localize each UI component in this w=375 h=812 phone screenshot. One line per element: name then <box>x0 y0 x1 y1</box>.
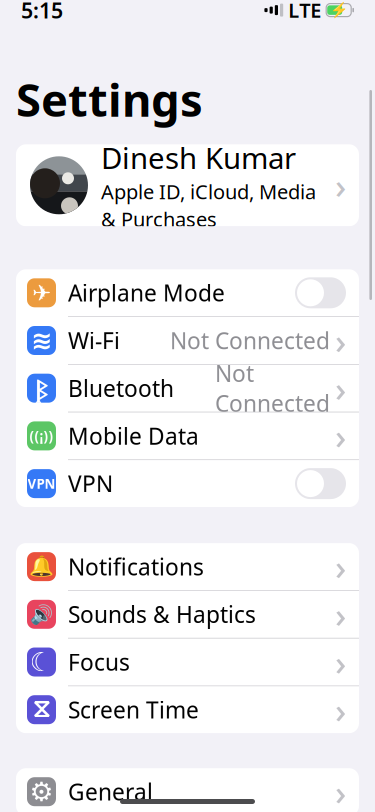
staticText: › <box>335 162 346 208</box>
staticText: ✈ <box>32 280 51 306</box>
button[interactable]: Dinesh Kumar <box>16 144 359 226</box>
button[interactable]: ✈ <box>16 269 359 316</box>
staticText: Notifications <box>68 551 204 582</box>
staticText: Settings <box>16 69 203 129</box>
staticText: › <box>335 769 346 812</box>
staticText: 🔊 <box>30 604 53 625</box>
staticText: Sounds & Haptics <box>68 599 256 629</box>
staticText: › <box>335 639 346 685</box>
staticText: Focus <box>68 647 130 677</box>
staticText: General <box>68 777 153 807</box>
button[interactable]: ≋ <box>16 317 359 364</box>
staticText: › <box>335 687 346 733</box>
button[interactable]: 🔔 <box>16 543 359 590</box>
staticText: 5:15 <box>21 0 63 24</box>
staticText: Not Connected <box>215 358 330 418</box>
staticText: 🔔 <box>29 555 54 578</box>
staticText: ≋ <box>31 326 52 355</box>
button[interactable]: ☾ <box>16 638 359 685</box>
staticText: & Purchases <box>101 206 217 232</box>
staticText: Mobile Data <box>68 421 199 451</box>
staticText: ᛒ <box>35 372 48 404</box>
button[interactable]: ᛒ <box>16 365 359 412</box>
button[interactable]: ((¡)) <box>16 412 359 459</box>
staticText: › <box>335 544 346 590</box>
button[interactable]: ⚙ <box>16 768 359 812</box>
staticText: Dinesh Kumar <box>101 138 296 177</box>
staticText: VPN <box>68 468 113 499</box>
staticText: › <box>335 413 346 459</box>
staticText: Apple ID, iCloud, Media <box>101 178 316 205</box>
staticText: VPN <box>27 475 55 492</box>
staticText: Not Connected <box>170 325 330 355</box>
button[interactable]: ⧖ <box>16 686 359 733</box>
staticText: ☾ <box>29 647 53 677</box>
staticText: ⚙ <box>29 777 53 807</box>
staticText: ⧖ <box>32 697 50 722</box>
staticText: Screen Time <box>68 695 199 725</box>
staticText: ⚡ <box>330 2 348 18</box>
staticText: › <box>335 591 346 637</box>
button[interactable]: 🔊 <box>16 591 359 638</box>
button[interactable]: VPN <box>16 460 359 507</box>
staticText: › <box>335 317 346 363</box>
staticText: Airplane Mode <box>68 278 225 308</box>
staticText: LTE <box>288 0 321 23</box>
staticText: Wi-Fi <box>68 325 120 355</box>
staticText: › <box>335 365 346 411</box>
staticText: Bluetooth <box>68 373 174 403</box>
staticText: ((¡)) <box>29 427 53 445</box>
